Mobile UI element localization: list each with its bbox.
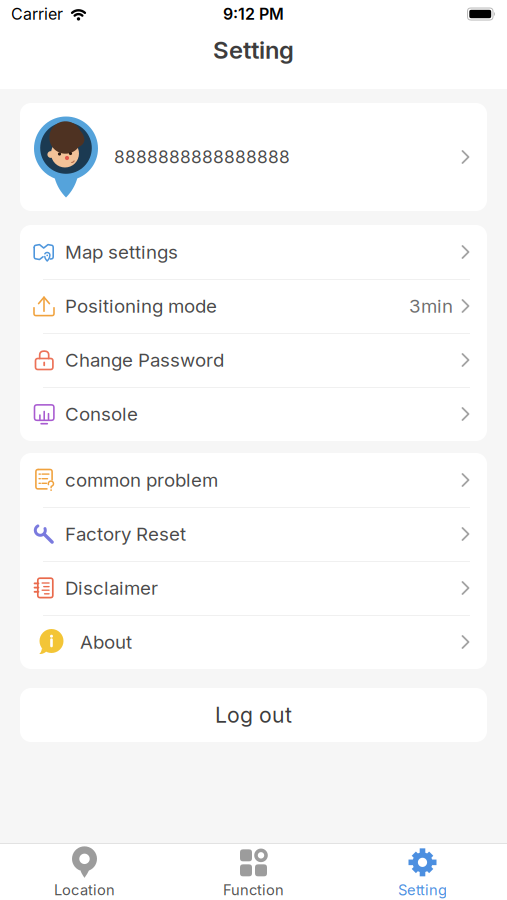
staticText: Log out: [215, 702, 292, 728]
staticText: Setting: [398, 881, 447, 899]
staticText: 3min: [409, 295, 453, 317]
button[interactable]: common problem: [20, 453, 487, 507]
staticText: Disclaimer: [65, 577, 158, 599]
staticText: Setting: [213, 36, 294, 64]
button[interactable]: Factory Reset: [20, 507, 487, 561]
staticText: common problem: [65, 469, 218, 491]
staticText: Map settings: [65, 241, 178, 263]
button[interactable]: Positioning mode: [20, 279, 487, 333]
staticText: 8888888888888888: [114, 147, 290, 167]
staticText: Function: [223, 881, 284, 899]
staticText: About: [80, 631, 132, 653]
button[interactable]: Change Password: [20, 333, 487, 387]
button[interactable]: Console: [20, 387, 487, 441]
button[interactable]: Function: [169, 845, 338, 899]
staticText: Console: [65, 403, 138, 425]
button[interactable]: Setting: [338, 845, 507, 899]
staticText: 9:12 PM: [223, 5, 284, 23]
staticText: Location: [54, 881, 115, 899]
button[interactable]: 8888888888888888: [20, 103, 487, 211]
button[interactable]: About: [20, 615, 487, 669]
staticText: Positioning mode: [65, 295, 217, 317]
button[interactable]: Location: [0, 845, 169, 899]
staticText: Change Password: [65, 349, 224, 371]
button[interactable]: Disclaimer: [20, 561, 487, 615]
staticText: Factory Reset: [65, 523, 186, 545]
button[interactable]: Map settings: [20, 225, 487, 279]
staticText: Carrier: [11, 5, 63, 23]
button[interactable]: Log out: [20, 688, 487, 742]
